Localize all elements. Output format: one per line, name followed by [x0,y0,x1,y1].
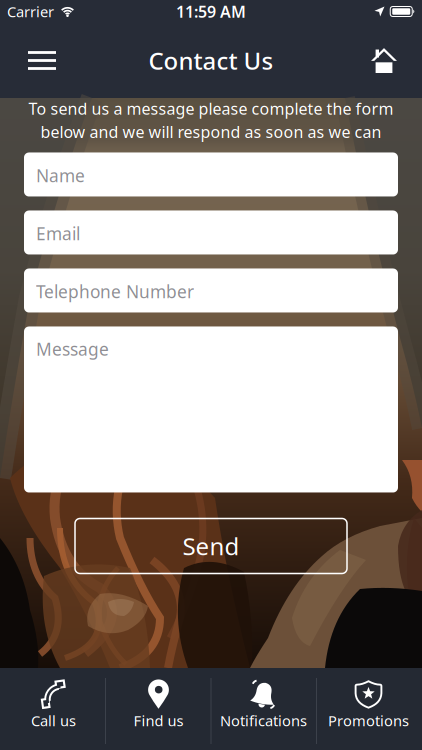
staticText: Telephone Number [36,280,194,303]
staticText: Name [36,164,85,187]
staticText: 11:59 AM [176,1,246,22]
staticText: Contact Us [148,45,273,76]
button[interactable]: Notifications [211,668,316,750]
button[interactable]: Message [24,326,398,492]
button[interactable]: Telephone Number [24,268,398,312]
staticText: Promotions [328,711,409,730]
staticText: To send us a message please complete the… [28,98,393,119]
staticText: Notifications [220,711,307,730]
button[interactable]: Email [24,210,398,254]
button[interactable]: Menu [20,40,64,80]
button[interactable]: Send [75,518,347,573]
button[interactable]: Find us [106,668,211,750]
staticText: Carrier [7,2,54,21]
staticText: below and we will respond as soon as we … [40,121,381,142]
staticText: Find us [133,711,183,730]
staticText: Call us [31,711,76,730]
staticText: Message [36,337,109,360]
button[interactable]: Name [24,152,398,196]
button[interactable]: Promotions [316,668,421,750]
button[interactable]: Call us [1,668,106,750]
staticText: Send [182,530,239,562]
staticText: Email [36,222,80,245]
button[interactable]: Home [362,40,406,80]
